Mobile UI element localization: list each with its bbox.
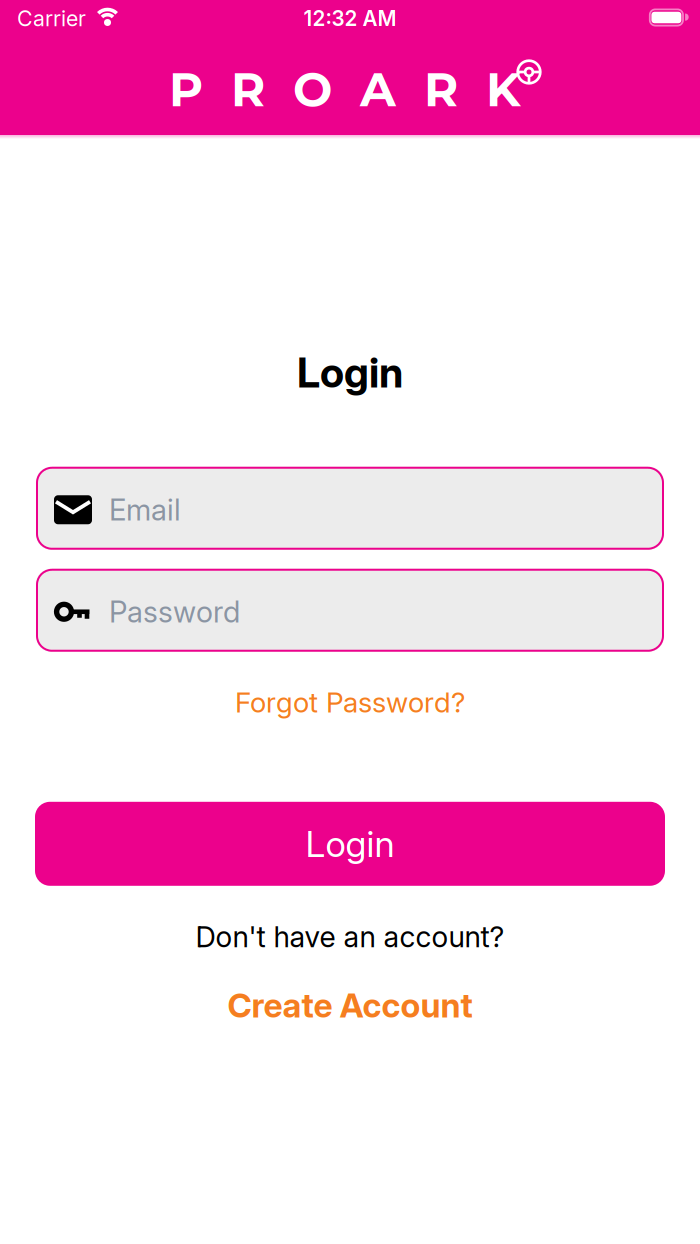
button[interactable]: Create Account bbox=[227, 986, 472, 1025]
button[interactable]: Password bbox=[36, 569, 664, 652]
button[interactable]: Email bbox=[36, 467, 664, 550]
staticText: Password bbox=[109, 594, 240, 629]
staticText: Create Account bbox=[227, 986, 472, 1025]
staticText: Login bbox=[297, 348, 403, 397]
staticText: A bbox=[360, 61, 396, 118]
staticText: Carrier bbox=[17, 6, 86, 31]
staticText: Login bbox=[305, 823, 394, 865]
staticText: Email bbox=[109, 492, 181, 527]
staticText: 12:32 AM bbox=[303, 6, 396, 31]
button[interactable]: Login bbox=[35, 802, 665, 886]
button[interactable]: Forgot Password? bbox=[235, 686, 465, 719]
staticText: Don't have an account? bbox=[195, 920, 504, 954]
staticText: O bbox=[293, 61, 332, 118]
staticText: K bbox=[486, 61, 521, 118]
staticText: Forgot Password? bbox=[235, 686, 465, 719]
staticText: P bbox=[169, 61, 203, 118]
staticText: R bbox=[231, 61, 265, 118]
staticText: R bbox=[424, 61, 458, 118]
